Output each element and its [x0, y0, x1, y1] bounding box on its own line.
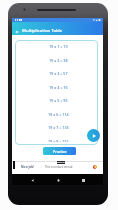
- button[interactable]: Practice: [43, 147, 76, 155]
- staticText: Practice: [53, 149, 67, 154]
- staticText: 19 x 7 = 133: [48, 125, 69, 130]
- staticText: Nice job!: [21, 165, 34, 169]
- button[interactable]: Play: [87, 129, 100, 142]
- staticText: This is a robust text ad: [45, 165, 73, 169]
- button[interactable]: Recents: [79, 176, 87, 184]
- staticText: 19 x 2 = 38: [49, 58, 68, 63]
- staticText: 19 x 6 = 114: [48, 112, 69, 117]
- button[interactable]: Back: [28, 176, 36, 184]
- staticText: 19 x 8 = 152: [48, 139, 69, 142]
- staticText: Read on: [57, 161, 65, 164]
- staticText: Multiplication Table: [22, 27, 63, 33]
- button[interactable]: Back: [15, 30, 19, 34]
- staticText: 19 x 1 = 19: [49, 44, 68, 49]
- button[interactable]: Back: [12, 22, 103, 35]
- staticText: 19 x 5 = 95: [49, 98, 68, 103]
- staticText: 19 x 4 = 76: [49, 85, 68, 90]
- staticText: 19 x 3 = 57: [49, 71, 68, 76]
- button[interactable]: Home: [54, 176, 62, 184]
